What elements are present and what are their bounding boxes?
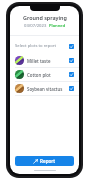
staticText: Planned — [49, 23, 66, 29]
staticText: Report — [40, 158, 56, 164]
button[interactable]: Cotton plot — [10, 68, 79, 81]
staticText: Cotton plot — [27, 72, 69, 78]
button[interactable]: Toggle selection — [69, 58, 74, 63]
button[interactable]: Send report — [15, 156, 74, 166]
button[interactable]: Select plots to report — [10, 41, 79, 51]
staticText: 03/07/2023 — [24, 23, 47, 29]
button[interactable]: Soybean vitactus — [10, 82, 79, 95]
button[interactable]: Toggle selection — [69, 86, 74, 91]
button[interactable]: Toggle selection — [69, 72, 74, 77]
other: Send report — [33, 159, 38, 164]
button[interactable]: Millet taste — [10, 54, 79, 67]
staticText: Select plots to report — [15, 43, 69, 49]
button[interactable]: Toggle selection — [69, 44, 74, 49]
staticText: Ground spraying — [23, 14, 67, 21]
staticText: Millet taste — [27, 58, 69, 64]
staticText: Soybean vitactus — [27, 86, 69, 92]
